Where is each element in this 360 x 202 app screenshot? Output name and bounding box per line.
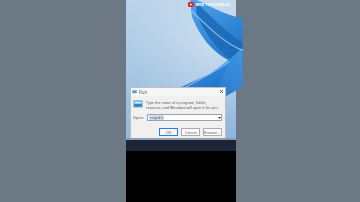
button[interactable]: Cancel	[181, 128, 200, 136]
staticText: Type the name of a program, folder, docu…	[146, 100, 222, 105]
staticText: resource, and Windows will open it for y…	[146, 105, 219, 110]
button[interactable]: Show history	[216, 114, 222, 121]
button[interactable]: OK	[159, 128, 178, 136]
staticText: Cancel	[185, 130, 197, 135]
staticText: OK	[166, 130, 172, 135]
staticText: Run	[139, 89, 148, 95]
staticText: regedit	[150, 115, 163, 120]
button[interactable]: regedit	[147, 114, 222, 121]
button[interactable]: Video player	[126, 0, 236, 202]
button[interactable]: Browse...	[203, 128, 222, 136]
button[interactable]: Close	[216, 87, 226, 96]
staticText: Browse...	[204, 130, 221, 135]
staticText: BTG TUTORIALS	[196, 2, 230, 7]
staticText: Open:	[133, 115, 144, 120]
